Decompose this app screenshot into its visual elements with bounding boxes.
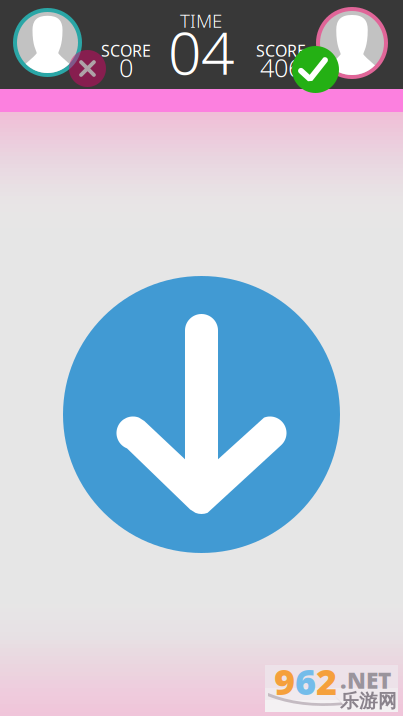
button[interactable]: Player two — [316, 7, 388, 79]
staticText: 406 — [260, 51, 302, 84]
button[interactable]: Tap down — [63, 276, 340, 553]
button[interactable]: Player one — [13, 8, 82, 77]
staticText: TIME — [180, 8, 222, 33]
staticText: 2 — [316, 657, 337, 705]
staticText: 0 — [119, 51, 133, 84]
staticText: .NET — [340, 665, 391, 695]
staticText: 9 — [274, 657, 295, 705]
staticText: SCORE — [256, 40, 306, 61]
staticText: SCORE — [101, 40, 151, 61]
staticText: 04 — [168, 13, 234, 91]
staticText: 6 — [295, 657, 316, 705]
staticText: 乐游网 — [340, 689, 397, 712]
